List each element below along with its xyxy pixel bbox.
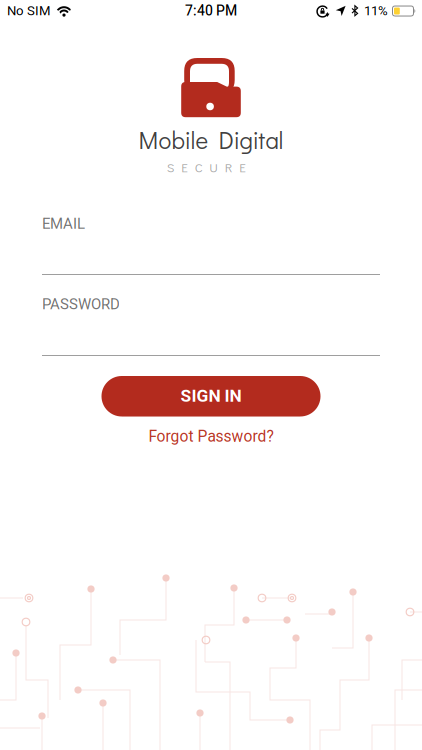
staticText: PASSWORD: [42, 293, 120, 315]
button[interactable]: Email: [0, 213, 422, 275]
staticText: S: [167, 158, 175, 176]
staticText: C: [195, 158, 203, 176]
staticText: 7:40 PM: [185, 1, 237, 21]
staticText: No SIM: [7, 1, 51, 21]
staticText: E: [239, 158, 246, 176]
staticText: E: [181, 158, 188, 176]
staticText: R: [225, 158, 233, 176]
staticText: SIGN IN: [180, 383, 241, 409]
staticText: Mobile Digital: [138, 124, 283, 155]
staticText: EMAIL: [42, 213, 85, 235]
button[interactable]: Forgot Password?: [148, 425, 273, 448]
staticText: 11%: [364, 1, 388, 21]
button[interactable]: SIGN IN: [101, 376, 320, 416]
staticText: Forgot Password?: [148, 425, 273, 448]
button[interactable]: Password: [0, 293, 422, 356]
staticText: U: [209, 158, 218, 176]
